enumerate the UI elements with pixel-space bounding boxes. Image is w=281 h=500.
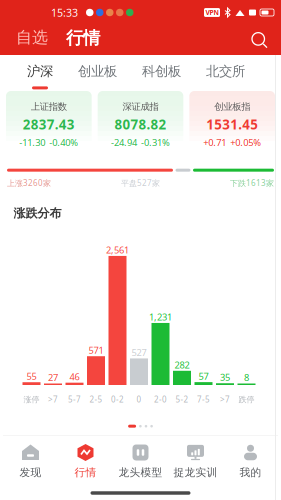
staticText: 创业板指 [214, 101, 250, 112]
staticText: 8 [244, 371, 249, 384]
staticText: 龙头模型 [118, 466, 162, 479]
staticText: 27 [48, 371, 58, 384]
staticText: 282 [174, 359, 189, 371]
staticText: 0 [136, 394, 141, 405]
staticText: 527 [131, 346, 146, 359]
staticText: 55 [26, 370, 36, 382]
staticText: 2837.43 [23, 115, 75, 133]
staticText: 5-2 [175, 394, 188, 405]
staticText: 自选 [16, 27, 48, 47]
button[interactable]: 深证成指 [98, 91, 183, 146]
staticText: 沪深 [27, 63, 53, 79]
staticText: 571 [88, 344, 103, 356]
button[interactable]: 沪深 [27, 55, 53, 91]
button[interactable]: 北交所 [206, 55, 245, 91]
staticText: -24.94 -0.31% [111, 136, 170, 149]
button[interactable]: 科创板 [142, 55, 181, 91]
button[interactable]: 我的 [223, 436, 278, 486]
button[interactable]: 搜索 [252, 33, 268, 49]
staticText: 7-5 [197, 394, 210, 405]
staticText: 上涨3260家 [7, 178, 51, 188]
staticText: 创业板 [78, 63, 117, 79]
button[interactable]: 创业板指 [189, 91, 275, 146]
staticText: 下跌1613家 [230, 178, 274, 188]
staticText: 上证指数 [31, 101, 67, 112]
staticText: 涨停 [23, 395, 39, 404]
button[interactable]: 上证指数 [6, 91, 92, 146]
staticText: 2-0 [154, 394, 167, 405]
staticText: -11.30 -0.40% [19, 136, 78, 149]
staticText: 1,231 [149, 311, 172, 323]
staticText: 发现 [19, 466, 41, 479]
staticText: 科创板 [142, 63, 181, 79]
staticText: 2-5 [89, 394, 102, 405]
staticText: >7 [220, 394, 230, 405]
staticText: 57 [198, 370, 208, 382]
staticText: 2,561 [106, 244, 129, 256]
button[interactable]: 捉龙实训 [168, 436, 223, 486]
button[interactable]: 龙头模型 [113, 436, 168, 486]
staticText: 跌停 [238, 395, 254, 404]
staticText: 我的 [239, 466, 261, 479]
staticText: 0-2 [111, 394, 124, 405]
staticText: 北交所 [206, 63, 245, 79]
staticText: +0.71 +0.05% [203, 136, 261, 149]
staticText: >7 [48, 394, 58, 405]
button[interactable]: 创业板 [78, 55, 117, 91]
button[interactable]: 行情 [58, 436, 113, 486]
staticText: 1531.45 [206, 115, 258, 133]
staticText: 35 [220, 371, 230, 383]
staticText: VPN [205, 8, 218, 17]
staticText: 行情 [66, 27, 100, 49]
staticText: 8078.82 [114, 115, 166, 133]
button[interactable]: 发现 [3, 436, 58, 486]
button[interactable]: 自选 [16, 27, 48, 49]
staticText: 捉龙实训 [173, 466, 217, 479]
staticText: 深证成指 [122, 101, 158, 112]
staticText: 15:33 [51, 5, 78, 20]
staticText: 46 [69, 370, 79, 383]
staticText: 平盘527家 [121, 178, 160, 188]
staticText: 涨跌分布 [13, 206, 61, 221]
button[interactable]: 行情 [66, 27, 100, 49]
staticText: 5-7 [68, 394, 81, 405]
staticText: 行情 [74, 466, 96, 479]
